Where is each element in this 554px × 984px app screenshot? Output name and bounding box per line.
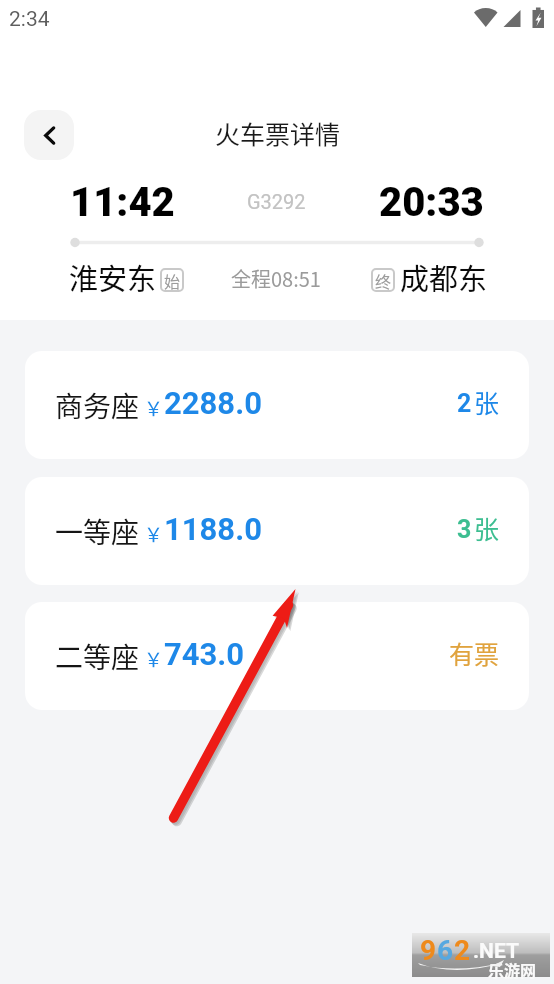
staticText: 张 — [474, 510, 500, 546]
staticText: 743.0 — [164, 636, 245, 672]
staticText: 始 — [164, 269, 181, 292]
staticText: 淮安东 — [69, 256, 157, 298]
staticText: 乐游网 — [488, 958, 537, 981]
staticText: 11:42 — [70, 179, 175, 226]
staticText: G3292 — [247, 190, 306, 213]
staticText: 2288.0 — [164, 385, 262, 421]
button[interactable]: Back — [24, 110, 74, 160]
staticText: 2 — [454, 934, 471, 967]
staticText: 3 — [457, 515, 472, 544]
staticText: 2 — [457, 389, 472, 418]
staticText: 全程08:51 — [231, 264, 321, 293]
staticText: 有票 — [449, 635, 500, 671]
staticText: .NET — [473, 939, 519, 964]
staticText: 火车票详情 — [215, 115, 341, 151]
staticText: ￥ — [144, 394, 164, 422]
staticText: ￥ — [144, 520, 164, 548]
staticText: 二等座 — [55, 636, 140, 677]
staticText: 终 — [375, 269, 392, 292]
staticText: 1188.0 — [164, 511, 262, 547]
staticText: 9 — [420, 934, 437, 967]
button[interactable]: 商务座 — [25, 351, 529, 459]
staticText: ￥ — [144, 645, 164, 673]
staticText: 20:33 — [379, 179, 484, 226]
staticText: 商务座 — [55, 385, 140, 426]
staticText: 一等座 — [55, 511, 140, 552]
button[interactable]: 二等座 — [25, 602, 529, 710]
staticText: 成都东 — [400, 256, 488, 298]
staticText: 6 — [437, 934, 454, 967]
button[interactable]: 一等座 — [25, 477, 529, 585]
staticText: 张 — [474, 384, 500, 420]
staticText: 2:34 — [9, 7, 50, 32]
